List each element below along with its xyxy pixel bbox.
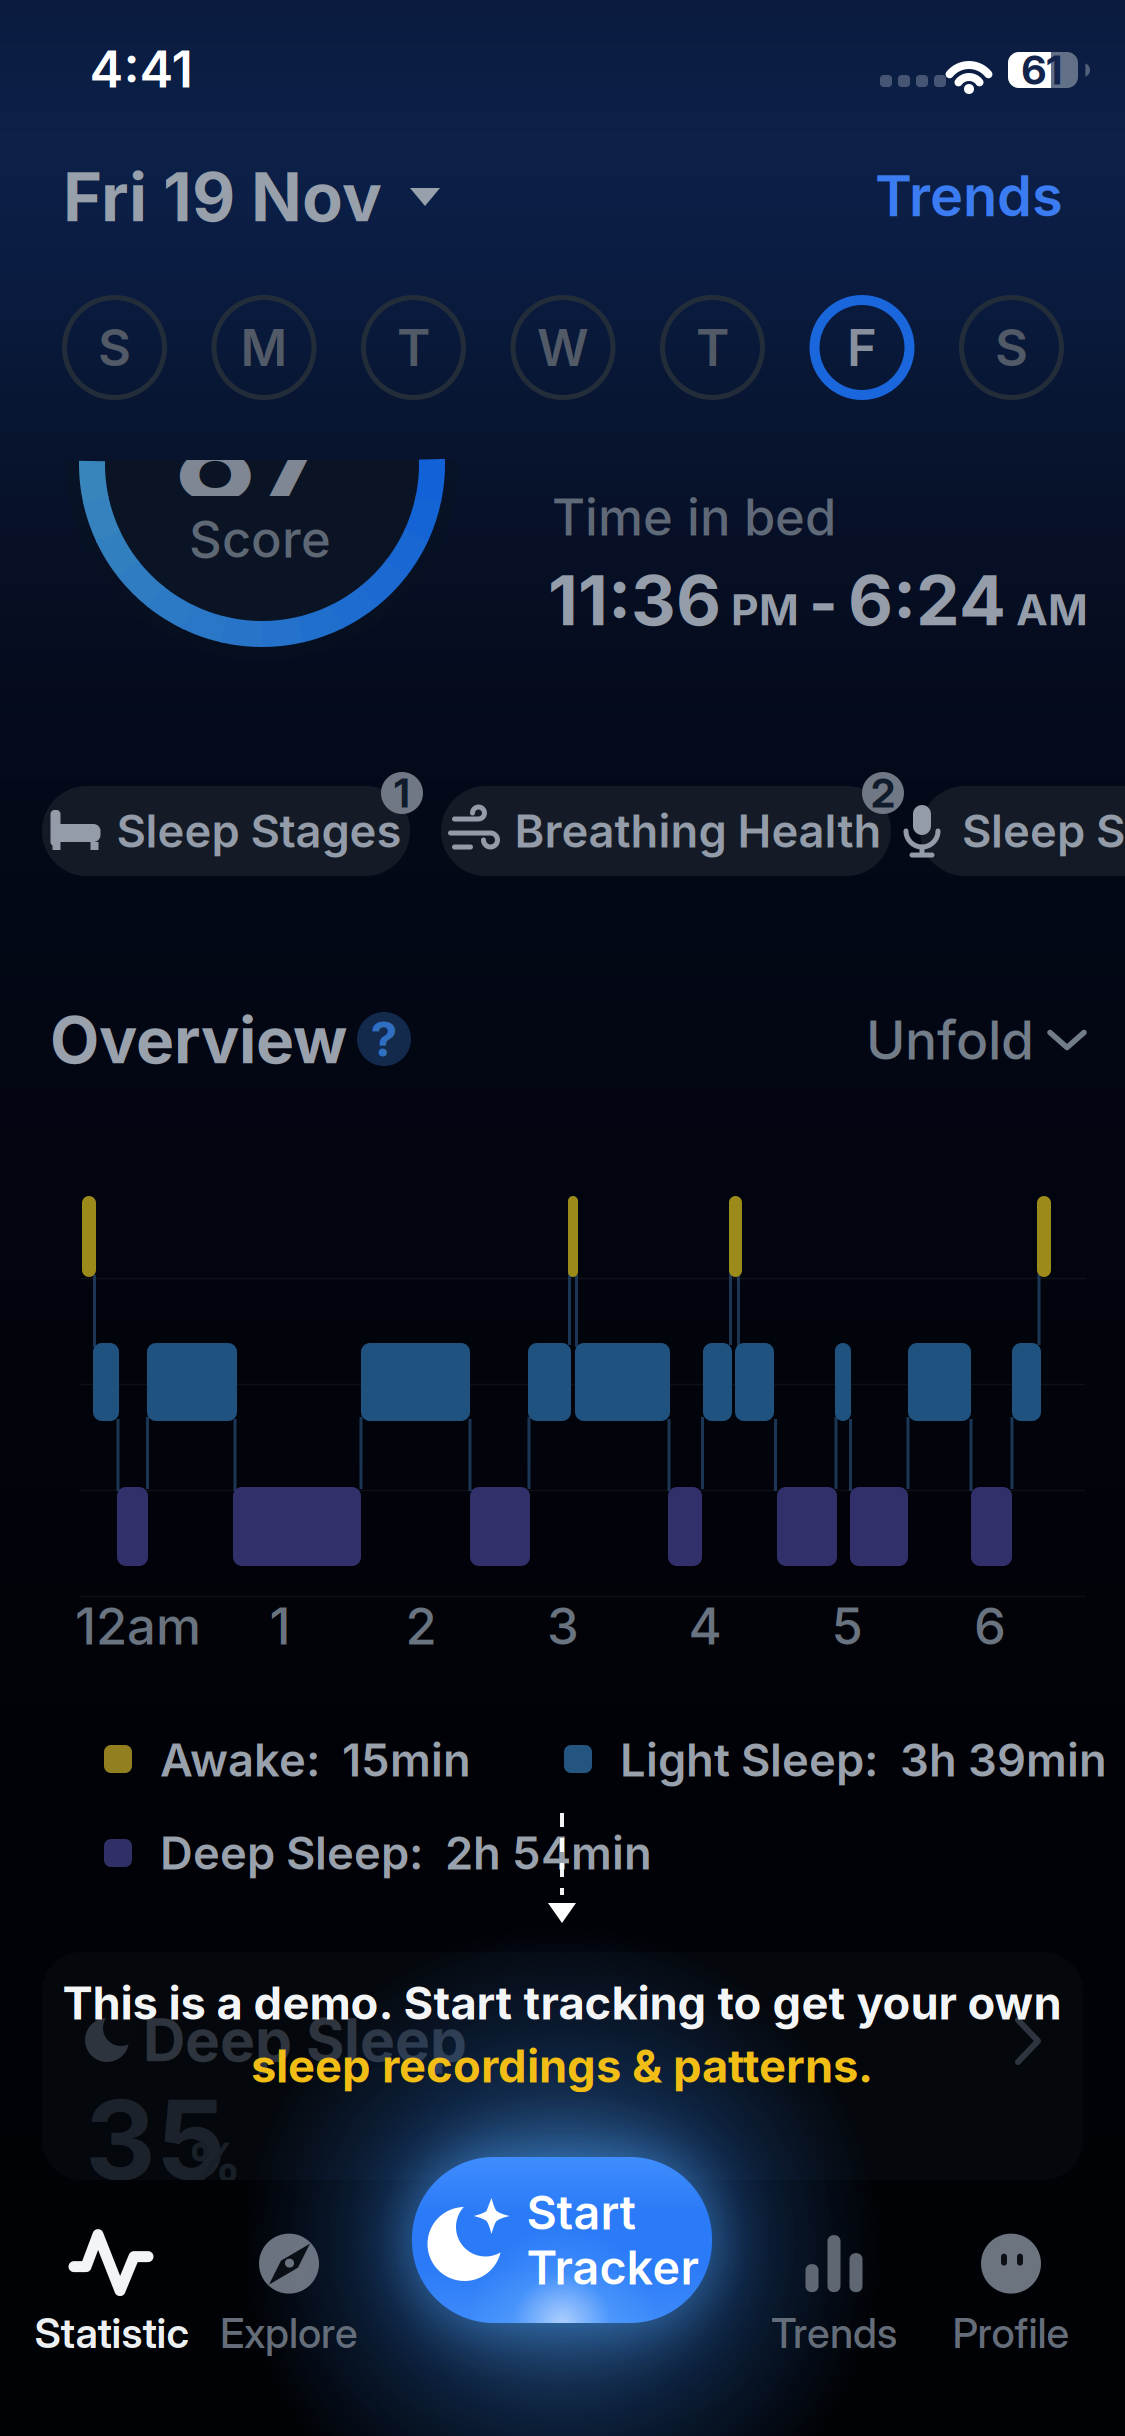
- staticText: 12am: [75, 1596, 201, 1656]
- button[interactable]: Trends: [734, 2219, 934, 2369]
- staticText: 35: [85, 2075, 226, 2204]
- staticText: W: [537, 318, 589, 377]
- staticText: 2: [405, 1596, 436, 1656]
- button[interactable]: W: [510, 295, 615, 400]
- staticText: Unfold: [866, 1008, 1034, 1071]
- staticText: M: [240, 318, 287, 377]
- staticText: %: [187, 2130, 241, 2193]
- staticText: Trends: [771, 2309, 897, 2357]
- staticText: S: [98, 318, 131, 377]
- staticText: Deep Sleep: [143, 2005, 467, 2075]
- staticText: 6: [974, 1596, 1006, 1656]
- button[interactable]: Profile: [911, 2219, 1111, 2369]
- button[interactable]: S: [959, 295, 1064, 400]
- staticText: 1: [394, 769, 410, 817]
- staticText: This is a demo. Start tracking to get yo…: [62, 1976, 1061, 2030]
- staticText: S: [995, 318, 1028, 377]
- staticText: Explore: [220, 2309, 358, 2357]
- staticText: 5: [831, 1596, 862, 1656]
- staticText: Profile: [952, 2309, 1069, 2357]
- staticText: ?: [370, 1011, 397, 1067]
- staticText: Start: [526, 2185, 635, 2240]
- staticText: 2: [871, 769, 895, 817]
- staticText: Light Sleep: 3h 39min: [620, 1733, 1107, 1787]
- staticText: PM: [731, 584, 799, 635]
- staticText: 1: [269, 1596, 290, 1656]
- button[interactable]: Help: [357, 1012, 411, 1066]
- button[interactable]: Sleep Stages: [0, 0, 1125, 2436]
- staticText: Awake: 15min: [160, 1733, 471, 1787]
- button[interactable]: Fri 19 Nov: [63, 152, 583, 242]
- button[interactable]: M: [211, 295, 316, 400]
- staticText: Tracker: [526, 2240, 699, 2295]
- button[interactable]: Breathing Health: [0, 0, 1125, 2436]
- staticText: 4:41: [89, 39, 192, 99]
- staticText: 4: [688, 1596, 721, 1656]
- button[interactable]: Start Tracker: [412, 2157, 712, 2323]
- staticText: F: [847, 318, 877, 377]
- button[interactable]: F: [809, 295, 914, 400]
- staticText: sleep recordings & patterns.: [251, 2039, 873, 2093]
- staticText: Statistic: [34, 2309, 189, 2357]
- staticText: T: [696, 318, 729, 377]
- button[interactable]: Unfold: [866, 1008, 1084, 1071]
- staticText: Deep Sleep: 2h 54min: [160, 1826, 652, 1880]
- staticText: Sleep Sounds: [962, 804, 1125, 858]
- staticText: AM: [1016, 584, 1088, 635]
- staticText: Sleep Stages: [116, 804, 401, 858]
- staticText: 61: [1021, 46, 1062, 94]
- button[interactable]: Trends: [803, 156, 1063, 236]
- staticText: T: [397, 318, 430, 377]
- staticText: Fri 19 Nov: [63, 158, 382, 236]
- staticText: Trends: [875, 163, 1063, 229]
- staticText: 3: [547, 1596, 579, 1656]
- button[interactable]: T: [361, 295, 466, 400]
- staticText: 87: [174, 380, 330, 530]
- button[interactable]: Statistic: [12, 2219, 212, 2369]
- button[interactable]: S: [62, 295, 167, 400]
- staticText: 11:36: [548, 559, 721, 641]
- staticText: Overview: [50, 1002, 347, 1078]
- button[interactable]: T: [660, 295, 765, 400]
- staticText: Time in bed: [552, 487, 836, 547]
- button[interactable]: Explore: [189, 2219, 389, 2369]
- staticText: Score: [189, 509, 331, 569]
- staticText: -: [809, 567, 838, 639]
- staticText: Breathing Health: [514, 804, 881, 858]
- staticText: 6:24: [848, 559, 1006, 641]
- button[interactable]: Sleep Sounds: [0, 0, 1125, 2436]
